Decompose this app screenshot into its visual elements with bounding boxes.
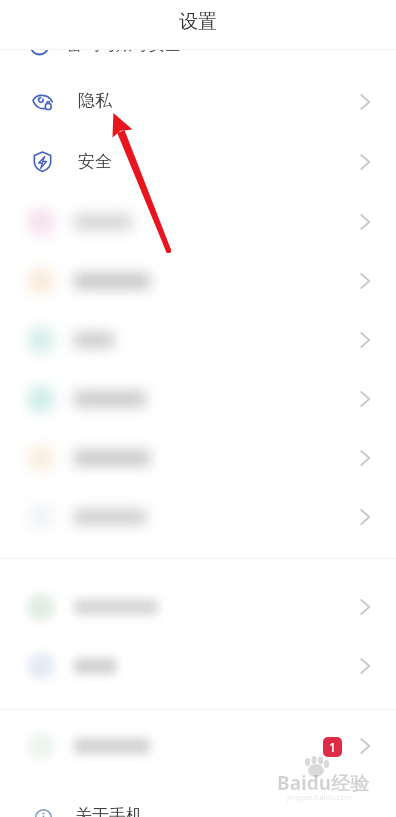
button[interactable]: 安全 [0, 135, 396, 187]
button[interactable]: 隐私 [0, 74, 396, 126]
staticText: 1 [329, 739, 336, 755]
staticText: 隐私 [78, 90, 112, 111]
staticText: 安全 [78, 151, 112, 172]
staticText: 密码与账号安全 [66, 34, 182, 55]
staticText: 关于手机 [75, 805, 143, 817]
staticText: 设置 [179, 10, 217, 34]
button[interactable]: 关于手机 [0, 795, 396, 817]
button[interactable]: 密码与账号安全 [0, 0, 396, 58]
staticText: Baidu经验 [277, 770, 370, 796]
staticText: jingyan.baidu.com [287, 792, 352, 802]
button[interactable]: 1 unread notification [323, 737, 342, 757]
